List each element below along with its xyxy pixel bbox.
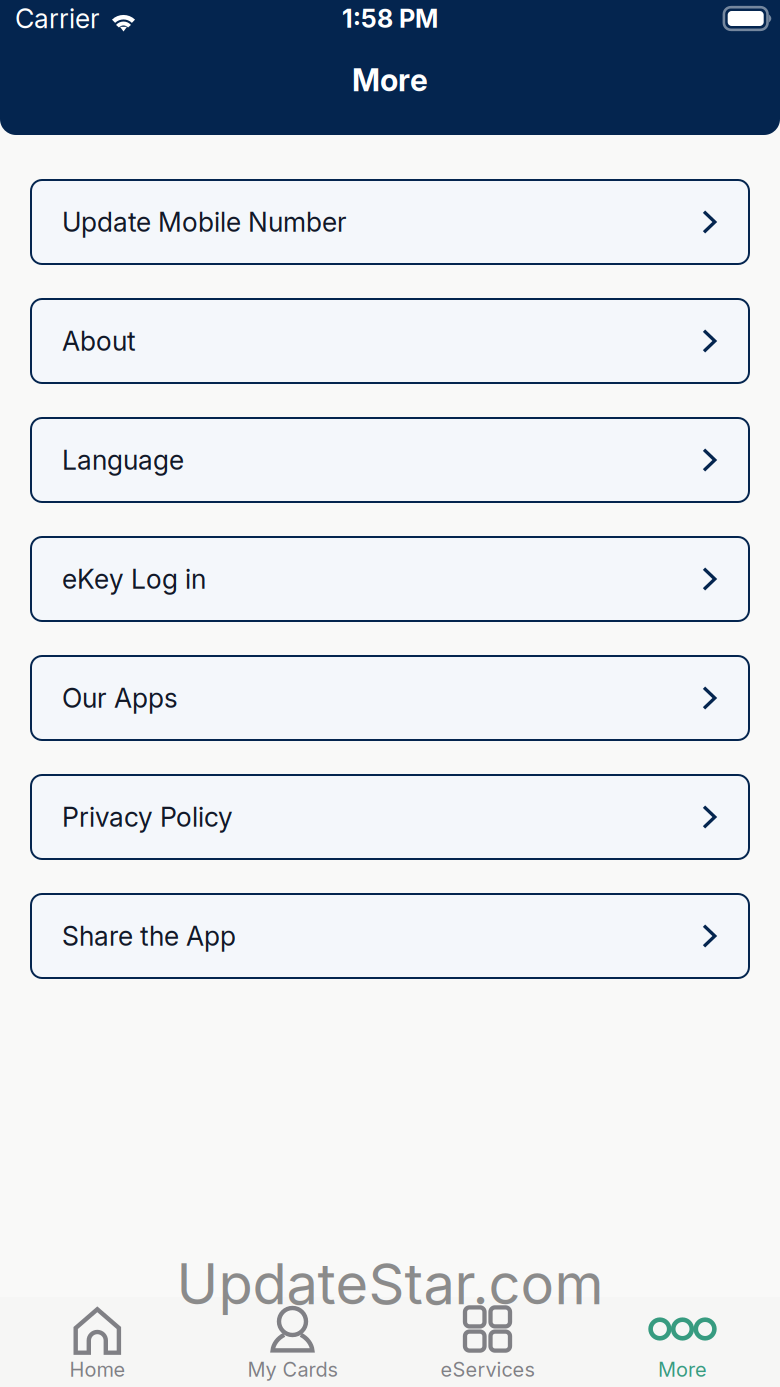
- button[interactable]: eKey Log in: [31, 537, 749, 621]
- button[interactable]: Share the App: [31, 894, 749, 978]
- staticText: Our Apps: [62, 682, 178, 714]
- staticText: 1:58 PM: [342, 3, 438, 34]
- staticText: Share the App: [62, 920, 236, 952]
- staticText: eServices: [440, 1357, 534, 1382]
- button[interactable]: My Cards: [195, 1297, 390, 1387]
- button[interactable]: Our Apps: [31, 656, 749, 740]
- button[interactable]: Language: [31, 418, 749, 502]
- button[interactable]: About: [31, 299, 749, 383]
- staticText: More: [658, 1357, 707, 1382]
- button[interactable]: More: [585, 1297, 780, 1387]
- staticText: More: [352, 61, 428, 98]
- staticText: UpdateStar.com: [176, 1250, 603, 1318]
- staticText: About: [62, 325, 136, 357]
- staticText: Home: [69, 1357, 125, 1382]
- button[interactable]: Privacy Policy: [31, 775, 749, 859]
- button[interactable]: Home: [0, 1297, 195, 1387]
- button[interactable]: Update Mobile Number: [31, 180, 749, 264]
- staticText: Language: [62, 444, 184, 476]
- button[interactable]: eServices: [390, 1297, 585, 1387]
- staticText: Update Mobile Number: [62, 206, 347, 238]
- staticText: Carrier: [15, 2, 100, 35]
- staticText: My Cards: [247, 1357, 337, 1382]
- staticText: eKey Log in: [62, 563, 206, 595]
- staticText: Privacy Policy: [62, 801, 233, 833]
